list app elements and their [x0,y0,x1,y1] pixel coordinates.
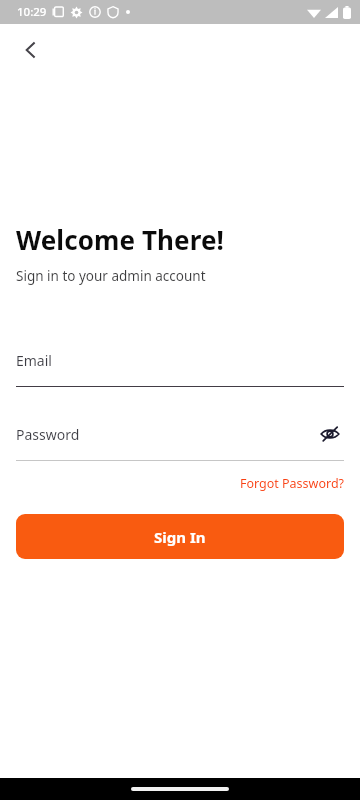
button[interactable]: Email [16,345,344,387]
button[interactable]: Show password [316,420,344,448]
staticText: 10:29 [17,4,47,20]
button[interactable]: Back [14,33,48,67]
button[interactable]: Sign In [16,514,344,559]
staticText: Sign In [154,527,206,547]
staticText: Forgot Password? [239,475,344,492]
button[interactable]: Password [16,419,344,449]
staticText: Email [16,351,52,370]
staticText: Welcome There! [16,222,224,257]
button[interactable]: Forgot Password? [239,475,344,492]
staticText: Sign in to your admin account [16,267,206,285]
staticText: Password [16,425,80,444]
